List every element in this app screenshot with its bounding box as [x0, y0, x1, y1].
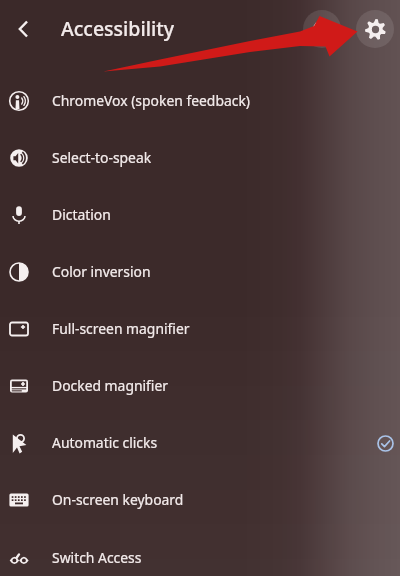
staticText: Dictation [52, 205, 111, 224]
button[interactable]: Color inversion [0, 243, 400, 300]
button[interactable]: Select-to-speak [0, 129, 400, 186]
staticText: Switch Access [52, 548, 142, 567]
button[interactable]: Back [6, 12, 40, 46]
button[interactable]: Automatic clicks [0, 414, 400, 471]
staticText: Full-screen magnifier [52, 319, 190, 338]
button[interactable]: ChromeVox (spoken feedback) [0, 72, 400, 129]
staticText: Accessibility [61, 15, 174, 42]
button[interactable]: Help [303, 10, 341, 48]
staticText: On-screen keyboard [52, 490, 184, 509]
button[interactable]: Docked magnifier [0, 357, 400, 414]
staticText: ChromeVox (spoken feedback) [52, 91, 250, 110]
staticText: Select-to-speak [52, 148, 152, 167]
button[interactable]: Full-screen magnifier [0, 300, 400, 357]
button[interactable]: On-screen keyboard [0, 471, 400, 528]
button[interactable]: Settings [356, 10, 394, 48]
staticText: Automatic clicks [52, 433, 158, 452]
staticText: Docked magnifier [52, 376, 169, 395]
staticText: Color inversion [52, 262, 151, 281]
button[interactable]: Dictation [0, 186, 400, 243]
button[interactable]: Switch Access [0, 529, 400, 576]
